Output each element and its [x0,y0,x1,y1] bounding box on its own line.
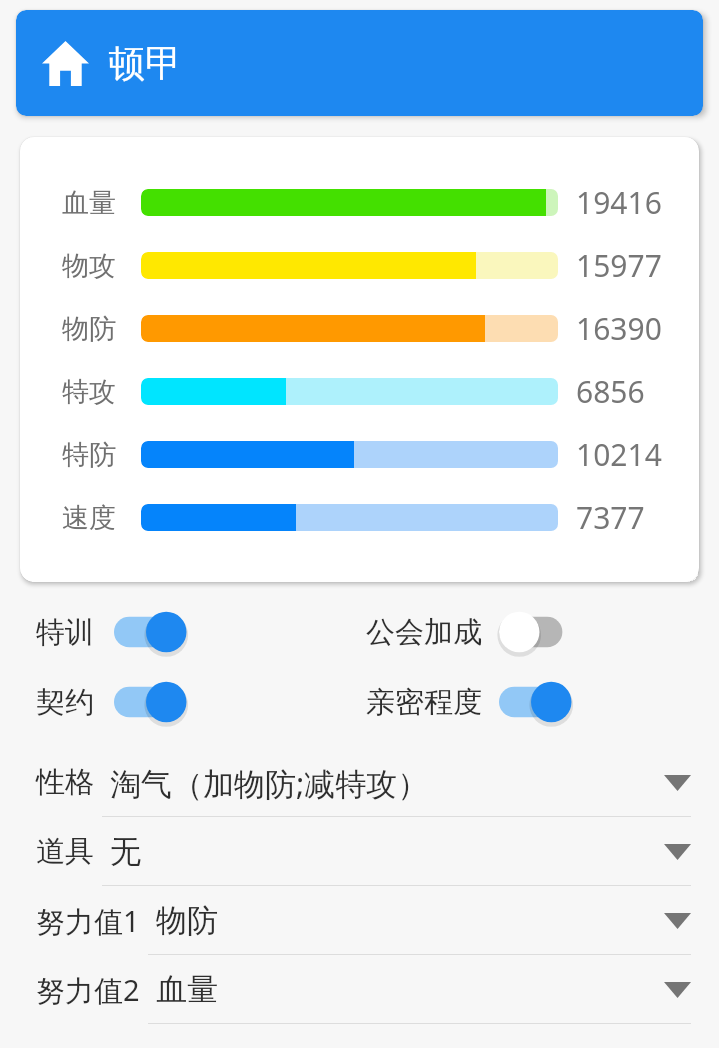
button[interactable] [112,679,184,725]
staticText: 物防 [62,312,116,346]
staticText: 道具 [36,833,94,870]
staticText: 契约 [36,684,94,721]
button[interactable]: 亲密程度 [359,674,719,730]
staticText: 性格 [36,764,94,801]
button[interactable]: 特训 [0,604,359,660]
button[interactable]: 特攻 [20,360,699,423]
button[interactable]: Home [42,40,89,87]
staticText: 物防 [156,901,218,940]
other: Expand [664,913,691,929]
staticText: 10214 [576,434,662,475]
staticText: 6856 [576,371,645,412]
button[interactable]: 契约 [0,674,359,730]
staticText: 16390 [576,308,662,349]
button[interactable]: 物防 [20,297,699,360]
staticText: 物攻 [62,249,116,283]
other: Expand [664,982,691,998]
staticText: 速度 [62,501,116,535]
staticText: 15977 [576,245,662,286]
button[interactable]: 物攻 [20,234,699,297]
staticText: 顿甲 [108,40,182,87]
button[interactable] [497,679,569,725]
staticText: 公会加成 [366,614,482,651]
button[interactable]: 努力值2 [0,955,719,1024]
staticText: 亲密程度 [366,684,482,721]
staticText: 努力值1 [36,901,140,941]
other: Expand [664,844,691,860]
button[interactable]: 速度 [20,486,699,549]
button[interactable]: 性格 [0,748,719,817]
button[interactable] [497,609,569,655]
staticText: 努力值2 [36,970,140,1010]
staticText: 特训 [36,614,94,651]
staticText: 血量 [156,970,218,1009]
staticText: 19416 [576,182,662,223]
button[interactable]: 努力值1 [0,886,719,955]
staticText: 7377 [576,497,645,538]
button[interactable]: 道具 [0,817,719,886]
other: Expand [664,775,691,791]
button[interactable]: 血量 [20,171,699,234]
button[interactable]: Home [16,10,703,116]
button[interactable] [112,609,184,655]
button[interactable]: 公会加成 [359,604,719,660]
button[interactable]: 特防 [20,423,699,486]
staticText: 无 [110,832,141,871]
staticText: 淘气（加物防;减特攻） [110,762,429,804]
staticText: 特攻 [62,375,116,409]
staticText: 特防 [62,438,116,472]
staticText: 血量 [62,186,116,220]
